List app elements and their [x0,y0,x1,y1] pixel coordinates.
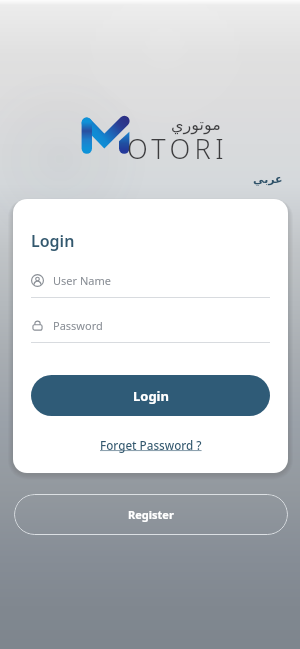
staticText: User Name [53,273,111,288]
staticText: Forget Password ? [100,437,202,453]
button[interactable]: Login [31,375,270,416]
button[interactable]: Forget Password ? [96,435,206,455]
staticText: عربي [253,173,283,186]
staticText: Login [31,230,75,252]
staticText: Password [53,318,103,333]
staticText: Register [128,507,174,522]
staticText: OTORI [127,130,228,167]
staticText: موتوري [171,115,221,134]
button[interactable]: Register [14,494,288,535]
staticText: Login [133,387,169,405]
button[interactable]: عربي [248,170,288,189]
